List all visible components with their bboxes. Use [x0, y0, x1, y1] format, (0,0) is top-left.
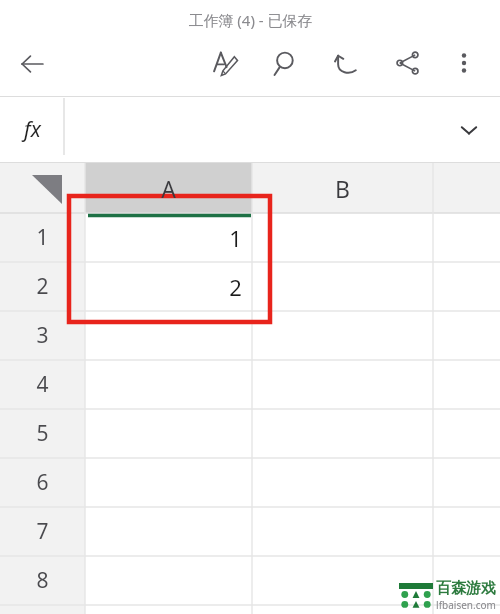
staticText: 2 [229, 272, 242, 302]
staticText: 4 [36, 370, 49, 399]
button[interactable]: Undo [325, 40, 371, 86]
button[interactable]: Share [385, 40, 431, 86]
staticText: B [335, 173, 350, 204]
staticText: 8 [36, 566, 49, 595]
button[interactable]: Edit [202, 40, 248, 86]
staticText: A [161, 173, 176, 204]
button[interactable]: 7 [0, 507, 85, 556]
staticText: fx [24, 115, 41, 144]
button[interactable]: Expand formula bar [448, 109, 490, 151]
button[interactable] [64, 96, 500, 163]
staticText: 5 [36, 419, 49, 448]
button[interactable]: Insert function [0, 96, 64, 163]
button[interactable]: 3 [0, 311, 85, 360]
staticText: 2 [36, 272, 49, 301]
staticText: lfbaisen.com [436, 598, 496, 612]
button[interactable]: 6 [0, 458, 85, 507]
button[interactable]: A [85, 163, 252, 213]
button[interactable]: 5 [0, 409, 85, 458]
button[interactable]: Back [8, 40, 56, 88]
staticText: 1 [229, 223, 242, 253]
button[interactable]: More options [441, 40, 487, 86]
staticText: 6 [36, 468, 49, 497]
button[interactable]: 1 [0, 213, 85, 262]
staticText: 1 [36, 223, 49, 252]
button[interactable]: Search [264, 40, 310, 86]
button[interactable]: 2 [0, 262, 85, 311]
button[interactable]: 4 [0, 360, 85, 409]
staticText: 工作簿 (4) - 已保存 [188, 10, 313, 30]
button[interactable]: A [0, 163, 500, 614]
button[interactable]: B [252, 163, 433, 213]
button[interactable]: 8 [0, 556, 85, 605]
staticText: 百森游戏 [436, 579, 496, 598]
staticText: 3 [36, 321, 49, 350]
staticText: 7 [36, 517, 49, 546]
